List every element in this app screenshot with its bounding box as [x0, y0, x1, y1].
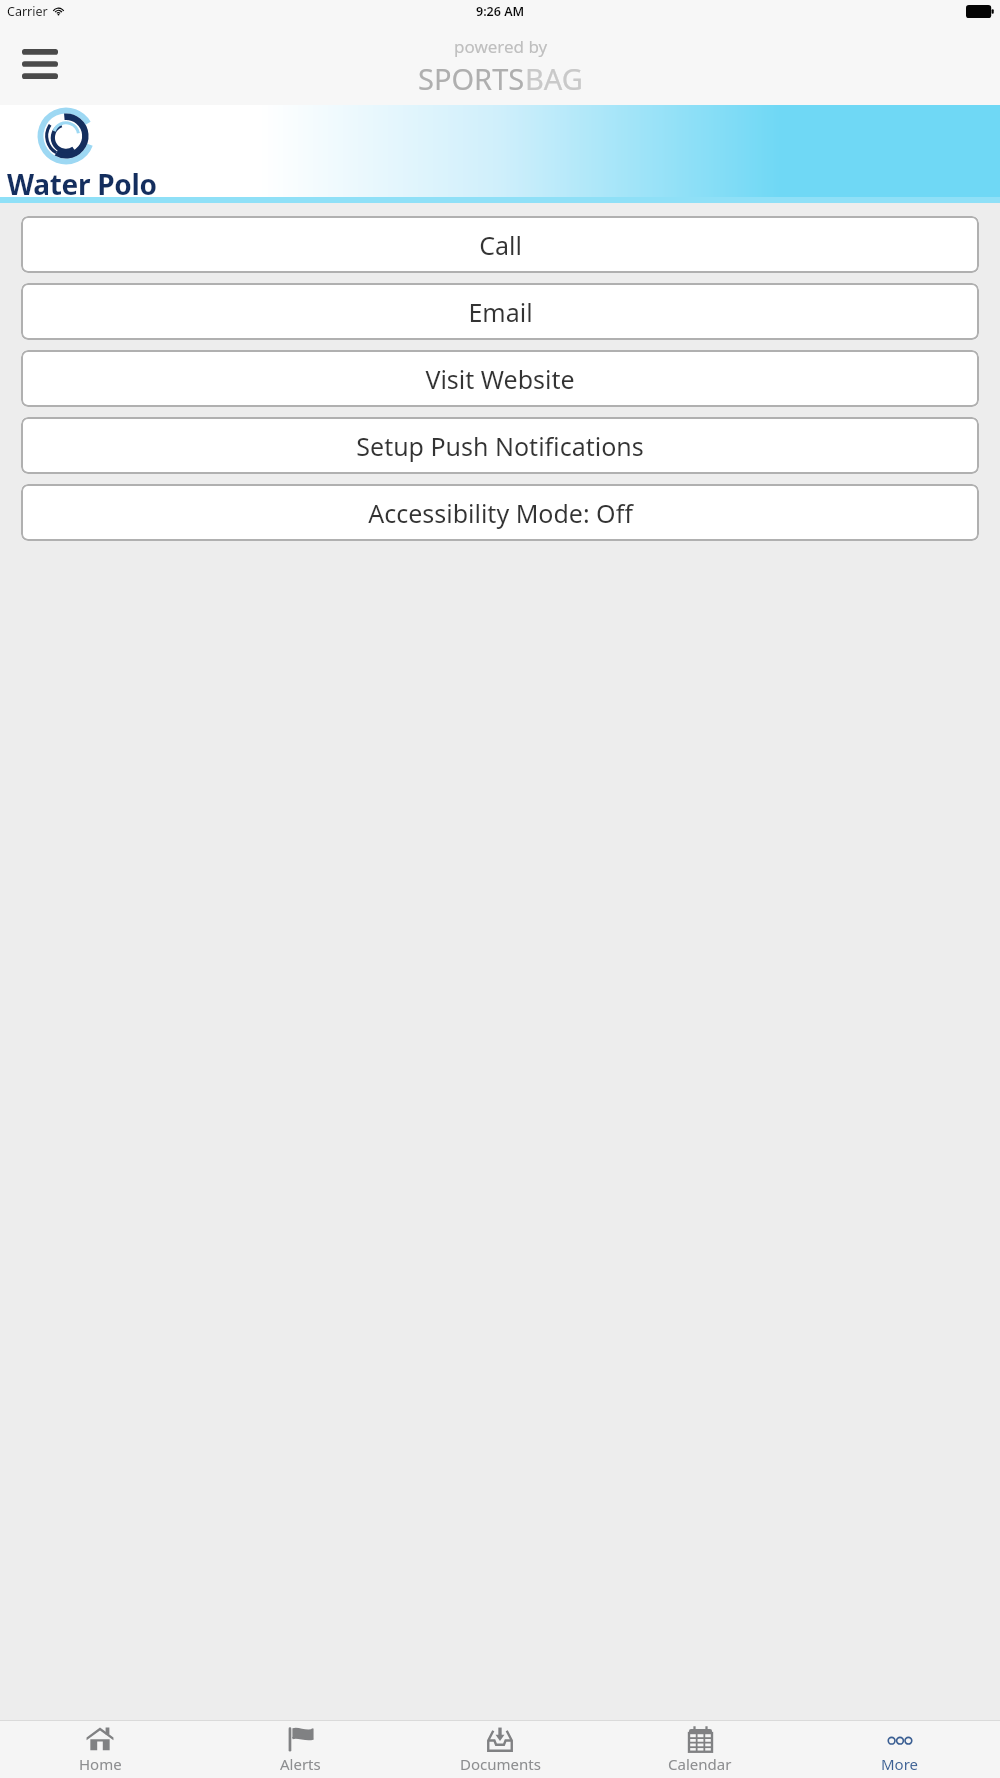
staticText: Water Polo: [7, 165, 157, 197]
button[interactable]: Home: [0, 1720, 200, 1778]
staticText: More: [881, 1754, 919, 1774]
staticText: Calendar: [668, 1754, 732, 1774]
button[interactable]: Call: [21, 216, 979, 273]
staticText: Visit Website: [425, 362, 575, 396]
button[interactable]: Documents: [400, 1720, 600, 1778]
staticText: powered by: [454, 35, 548, 58]
staticText: SPORTS: [418, 59, 525, 98]
staticText: 9:26 AM: [476, 3, 525, 20]
staticText: Home: [79, 1754, 122, 1774]
staticText: Call: [479, 228, 522, 262]
staticText: Accessibility Mode: Off: [368, 496, 633, 530]
staticText: Documents: [460, 1754, 541, 1774]
staticText: Setup Push Notifications: [356, 429, 644, 463]
staticText: Carrier: [7, 3, 48, 20]
button[interactable]: Accessibility Mode: Off: [21, 484, 979, 541]
button[interactable]: Email: [21, 283, 979, 340]
button[interactable]: Calendar: [600, 1720, 800, 1778]
staticText: Alerts: [280, 1754, 321, 1774]
button[interactable]: More: [800, 1720, 1000, 1778]
button[interactable]: Setup Push Notifications: [21, 417, 979, 474]
staticText: BAG: [525, 59, 583, 98]
staticText: Email: [468, 295, 533, 329]
button[interactable]: Menu: [17, 41, 63, 87]
button[interactable]: Alerts: [200, 1720, 400, 1778]
button[interactable]: Visit Website: [21, 350, 979, 407]
